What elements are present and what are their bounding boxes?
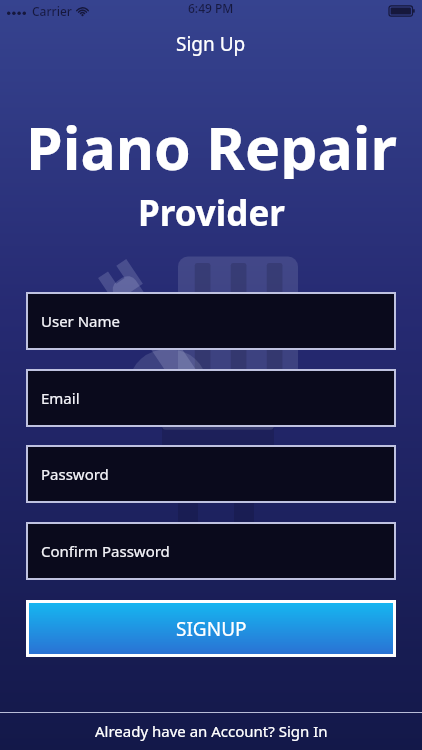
staticText: User Name: [41, 311, 121, 331]
staticText: Sign Up: [176, 31, 246, 57]
staticText: Password: [41, 464, 109, 484]
button[interactable]: Already have an Account? Sign In: [0, 712, 422, 750]
staticText: 6:49 PM: [188, 0, 234, 16]
staticText: Already have an Account? Sign In: [95, 721, 328, 741]
staticText: Carrier: [32, 3, 72, 19]
button[interactable]: Confirm Password: [28, 524, 394, 578]
staticText: Confirm Password: [41, 541, 170, 561]
staticText: Email: [41, 388, 80, 408]
button[interactable]: SIGNUP: [29, 603, 393, 654]
button[interactable]: User Name: [28, 294, 394, 348]
staticText: Piano Repair: [26, 107, 397, 179]
button[interactable]: Email: [28, 371, 394, 425]
button[interactable]: Password: [28, 447, 394, 501]
staticText: Provider: [138, 189, 285, 233]
staticText: SIGNUP: [176, 616, 247, 642]
